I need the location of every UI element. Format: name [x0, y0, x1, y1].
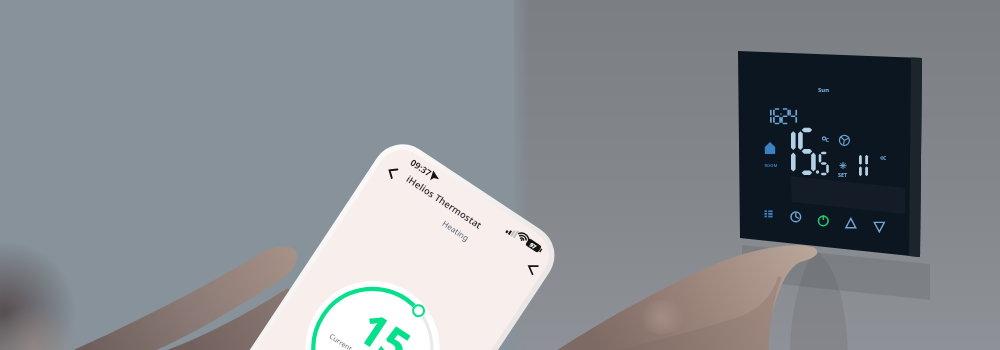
other: Smart thermostat app — [0, 0, 1000, 350]
